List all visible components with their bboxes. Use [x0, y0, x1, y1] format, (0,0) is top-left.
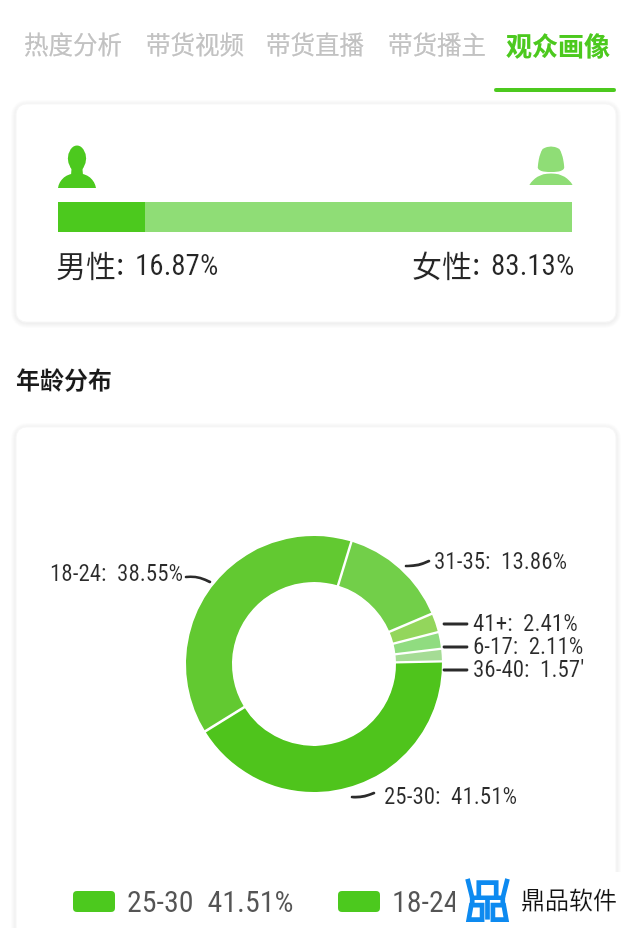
button[interactable]: 男性 — [16, 104, 616, 322]
staticText: 热度分析 — [24, 26, 122, 61]
staticText: 18-24: 38.55% — [50, 560, 184, 587]
staticText: 带货直播 — [266, 26, 364, 61]
staticText: 带货视频 — [146, 26, 244, 61]
staticText: 18-24 38.55% — [392, 884, 559, 919]
staticText: 观众画像 — [506, 26, 611, 64]
staticText: 年龄分布 — [16, 361, 112, 396]
staticText: 36-40: 1.57' — [473, 656, 585, 683]
staticText: : — [472, 240, 481, 283]
other: 鼎品软件 watermark — [455, 872, 625, 928]
button[interactable]: 18-24: 38.55% — [16, 427, 616, 928]
button[interactable]: 观众画像 — [494, 8, 622, 86]
button[interactable]: 带货播主 — [376, 8, 498, 86]
staticText: 83.13% — [491, 248, 575, 282]
staticText: 带货播主 — [388, 26, 486, 61]
staticText: 男性 — [56, 242, 116, 285]
staticText: 25-30 41.51% — [127, 884, 294, 919]
staticText: 16.87% — [135, 248, 219, 282]
staticText: : — [116, 240, 125, 283]
staticText: 6-17: 2.11% — [473, 633, 584, 660]
staticText: 25-30: 41.51% — [384, 783, 518, 810]
button[interactable]: 25-30 41.51% — [73, 884, 294, 919]
staticText: 女性 — [412, 242, 472, 285]
button[interactable]: 18-24 38.55% — [338, 884, 559, 919]
button[interactable]: 带货直播 — [254, 8, 376, 86]
staticText: 31-35: 13.86% — [434, 548, 568, 575]
staticText: 鼎品软件 — [521, 881, 617, 916]
button[interactable]: 热度分析 — [12, 8, 134, 86]
button[interactable]: 带货视频 — [134, 8, 256, 86]
staticText: 41+: 2.41% — [473, 610, 578, 637]
